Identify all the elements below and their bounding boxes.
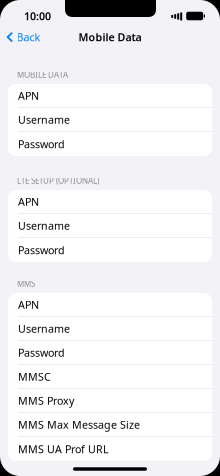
button[interactable]: Password — [8, 132, 212, 156]
staticText: Password — [18, 243, 65, 257]
staticText: MMS Proxy — [18, 393, 74, 408]
staticText: Username — [18, 112, 70, 127]
button[interactable]: Password — [8, 341, 212, 365]
staticText: Back — [16, 30, 40, 44]
staticText: Username — [18, 321, 70, 336]
staticText: MMS Max Message Size — [18, 417, 140, 432]
staticText: Password — [18, 137, 65, 151]
button[interactable]: Username — [8, 317, 212, 341]
button[interactable]: Username — [8, 108, 212, 132]
button[interactable]: APN — [8, 84, 212, 108]
staticText: Username — [18, 218, 70, 233]
staticText: MMS UA Prof URL — [18, 442, 109, 456]
button[interactable]: MMSC — [8, 365, 212, 389]
staticText: Mobile Data — [78, 30, 141, 44]
staticText: LTE SETUP (OPTIONAL) — [17, 175, 99, 186]
staticText: MOBILE DATA — [17, 69, 68, 80]
button[interactable]: MMS Proxy — [8, 389, 212, 413]
staticText: APN — [18, 297, 39, 312]
staticText: 10:00 — [24, 9, 51, 23]
button[interactable]: MMS UA Prof URL — [8, 437, 212, 461]
staticText: APN — [18, 88, 39, 103]
staticText: APN — [18, 194, 39, 209]
staticText: MMS — [17, 278, 35, 289]
button[interactable]: MMS Max Message Size — [8, 413, 212, 437]
button[interactable]: Password — [8, 238, 212, 262]
button[interactable]: Username — [8, 214, 212, 238]
button[interactable]: APN — [8, 293, 212, 317]
button[interactable]: APN — [8, 190, 212, 214]
staticText: Password — [18, 345, 65, 360]
button[interactable]: Back — [0, 26, 40, 48]
staticText: MMSC — [18, 369, 51, 384]
